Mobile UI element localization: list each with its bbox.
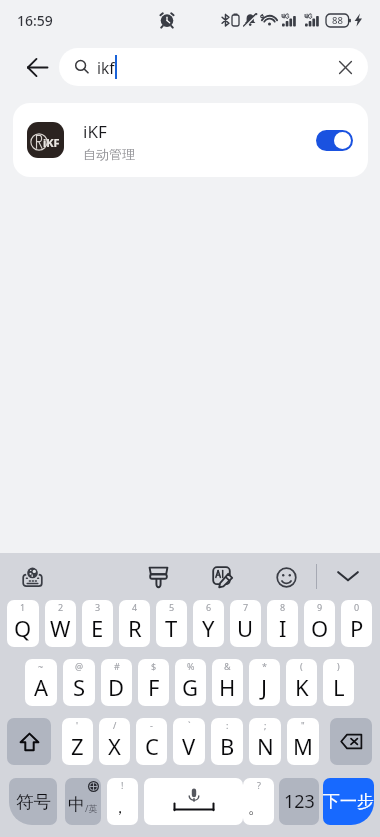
button[interactable]: Auto manage toggle — [316, 130, 353, 151]
staticText: * — [262, 660, 267, 672]
button[interactable]: AI writing — [207, 561, 239, 593]
button[interactable]: 0 — [341, 600, 372, 647]
staticText: ( — [300, 660, 303, 672]
staticText: @ — [75, 660, 84, 672]
staticText: ， — [112, 798, 128, 818]
staticText: Z — [71, 731, 84, 761]
staticText: Y — [202, 613, 215, 643]
button[interactable]: # — [101, 659, 132, 706]
staticText: # — [114, 660, 120, 672]
button[interactable]: - — [136, 718, 167, 765]
button[interactable]: ) — [323, 659, 354, 706]
staticText: iKF — [43, 135, 60, 150]
staticText: 8 — [280, 601, 286, 613]
staticText: 2 — [58, 601, 64, 613]
staticText: $ — [151, 660, 157, 672]
staticText: ? — [257, 779, 261, 791]
staticText: ) — [337, 660, 340, 672]
button[interactable]: Hide keyboard — [332, 561, 364, 593]
button[interactable]: 2 — [45, 600, 76, 647]
button[interactable]: ' — [62, 718, 93, 765]
staticText: ; — [264, 719, 267, 731]
staticText: F — [148, 672, 160, 702]
button[interactable]: Clear text — [330, 52, 360, 82]
button[interactable]: ~ — [25, 659, 57, 706]
button[interactable]: @ — [63, 659, 95, 706]
staticText: 符号 — [16, 791, 51, 813]
staticText: ! — [121, 779, 124, 791]
button[interactable]: 9 — [304, 600, 335, 647]
staticText: 1 — [20, 601, 26, 613]
staticText: U — [237, 613, 254, 643]
button[interactable]: 3 — [82, 600, 113, 647]
button[interactable]: " — [287, 718, 319, 765]
staticText: : — [226, 719, 229, 731]
staticText: W — [50, 613, 71, 643]
button[interactable]: 123 — [279, 778, 319, 825]
staticText: Q — [14, 613, 32, 643]
staticText: 5 — [169, 601, 175, 613]
staticText: 0 — [354, 601, 360, 613]
button[interactable]: * — [249, 659, 280, 706]
staticText: A — [34, 672, 49, 702]
button[interactable]: ` — [173, 718, 205, 765]
staticText: ' — [76, 719, 79, 731]
staticText: 自动管理 — [83, 146, 135, 162]
staticText: iKF — [83, 120, 107, 143]
staticText: H — [219, 672, 236, 702]
button[interactable]: iKF — [13, 103, 368, 177]
button[interactable]: Theme — [142, 561, 174, 593]
staticText: V — [182, 731, 196, 761]
button[interactable]: Space, voice input — [144, 778, 243, 825]
button[interactable]: % — [175, 659, 206, 706]
button[interactable]: ? — [243, 778, 274, 825]
button[interactable]: Backspace — [330, 718, 372, 765]
staticText: O — [311, 613, 329, 643]
button[interactable]: 8 — [267, 600, 298, 647]
button[interactable]: : — [211, 718, 243, 765]
staticText: & — [224, 660, 231, 672]
staticText: ikf — [97, 57, 115, 78]
staticText: X — [108, 731, 121, 761]
button[interactable]: 1 — [7, 600, 39, 647]
staticText: E — [91, 613, 104, 643]
button[interactable]: 下一步 — [323, 778, 374, 825]
button[interactable]: Back — [17, 48, 57, 86]
button[interactable]: / — [99, 718, 130, 765]
staticText: 4 — [132, 601, 138, 613]
staticText: P — [350, 613, 364, 643]
staticText: G — [182, 672, 199, 702]
staticText: C — [145, 731, 159, 761]
staticText: % — [187, 660, 195, 672]
staticText: N — [257, 731, 274, 761]
button[interactable]: & — [212, 659, 243, 706]
staticText: 中 — [68, 794, 85, 815]
button[interactable]: Emoji — [270, 561, 302, 593]
button[interactable]: 符号 — [9, 778, 57, 825]
staticText: " — [301, 719, 305, 731]
staticText: T — [165, 613, 178, 643]
button[interactable]: Switch language — [16, 561, 48, 593]
button[interactable]: ; — [249, 718, 281, 765]
staticText: ` — [188, 719, 191, 731]
button[interactable]: 4 — [119, 600, 150, 647]
staticText: S — [73, 672, 86, 702]
staticText: 88 — [332, 14, 343, 27]
staticText: 3 — [95, 601, 101, 613]
staticText: B — [220, 731, 235, 761]
staticText: ~ — [38, 660, 44, 672]
button[interactable]: 5 — [156, 600, 187, 647]
button[interactable]: 6 — [193, 600, 224, 647]
staticText: 16:59 — [17, 11, 53, 30]
button[interactable]: Shift — [7, 718, 51, 765]
button[interactable]: ikf — [59, 48, 368, 86]
button[interactable]: ( — [286, 659, 317, 706]
button[interactable]: 7 — [230, 600, 261, 647]
staticText: K — [295, 672, 309, 702]
staticText: J — [261, 672, 268, 702]
staticText: M — [293, 731, 313, 761]
button[interactable]: Chinese English toggle — [65, 778, 101, 825]
staticText: 。 — [248, 798, 264, 818]
button[interactable]: $ — [138, 659, 169, 706]
button[interactable]: ! — [107, 778, 138, 825]
